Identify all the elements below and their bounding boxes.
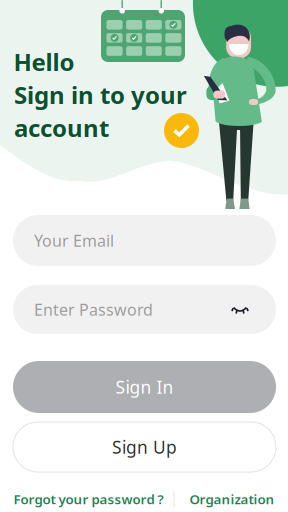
staticText: Hello xyxy=(13,46,74,78)
button[interactable]: Sign Up xyxy=(13,422,276,472)
staticText: Enter Password xyxy=(34,299,153,320)
staticText: Your Email xyxy=(34,230,114,251)
button[interactable]: Show password xyxy=(224,293,256,325)
staticText: Sign Up xyxy=(112,435,177,458)
staticText: Organization xyxy=(189,490,274,508)
button[interactable]: Sign In xyxy=(13,361,276,413)
staticText: Sign In xyxy=(115,375,173,398)
button[interactable]: Forgot your password ? xyxy=(13,490,163,508)
staticText: Sign in to your xyxy=(14,79,187,111)
button[interactable]: Organization xyxy=(189,490,274,508)
staticText: Forgot your password ? xyxy=(13,490,163,508)
staticText: account xyxy=(14,112,109,144)
